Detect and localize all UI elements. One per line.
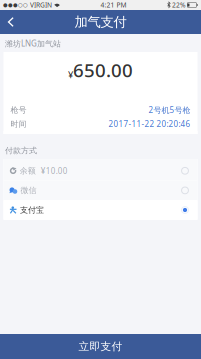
staticText: 2号机5号枪	[148, 105, 190, 115]
staticText: 立即支付	[78, 340, 122, 353]
button[interactable]: 微信	[3, 181, 197, 200]
staticText: 时间	[10, 119, 26, 129]
staticText: ¥	[68, 68, 73, 81]
staticText: 650.00	[73, 58, 133, 82]
staticText: 2017-11-22 20:20:46	[108, 119, 190, 129]
staticText: 加气支付	[74, 14, 126, 30]
staticText: 潍坊LNG加气站	[5, 38, 61, 49]
staticText: ¥10.00	[41, 165, 68, 176]
button[interactable]: 余额	[3, 161, 197, 181]
staticText: ●●●○○	[3, 2, 28, 8]
staticText: 余额	[20, 166, 36, 176]
staticText: 付款方式	[5, 146, 37, 155]
button[interactable]: 支付宝	[3, 200, 197, 220]
staticText: 4:21 PM	[100, 1, 126, 9]
staticText: 22%	[172, 1, 186, 9]
staticText: 支付宝	[20, 205, 44, 215]
staticText: VIRGIN	[28, 1, 52, 9]
button[interactable]: Back	[0, 10, 22, 34]
button[interactable]: 立即支付	[0, 334, 201, 359]
staticText: 枪号	[10, 105, 26, 115]
staticText: 微信	[20, 185, 36, 195]
